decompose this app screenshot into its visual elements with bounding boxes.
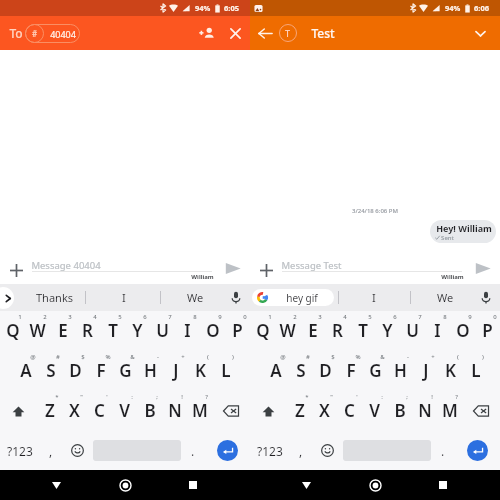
button[interactable]: 2 (25, 311, 50, 351)
button[interactable]: + (163, 351, 188, 391)
button[interactable]: . (431, 431, 455, 470)
button[interactable]: , (290, 431, 312, 470)
button[interactable]: Shift (0, 391, 37, 431)
button[interactable]: Recents (429, 471, 457, 499)
button[interactable]: Backspace (462, 391, 500, 431)
staticText: H (394, 359, 407, 382)
button[interactable]: ) (463, 351, 488, 391)
button[interactable]: Send (222, 257, 244, 279)
button[interactable]: Close (221, 19, 249, 47)
button[interactable]: Back (251, 19, 279, 47)
button[interactable]: : (112, 391, 137, 431)
button[interactable]: ?123 (0, 431, 40, 470)
button[interactable]: # (38, 351, 63, 391)
button[interactable]: hey gif (252, 289, 334, 306)
button[interactable]: , (40, 431, 62, 470)
button[interactable]: Enter (217, 440, 238, 461)
button[interactable]: Recents (179, 471, 207, 499)
button[interactable]: ? (187, 391, 212, 431)
button[interactable]: More suggestions (0, 287, 14, 309)
button[interactable]: Voice input (475, 284, 497, 311)
button[interactable]: @ (263, 351, 288, 391)
button[interactable]: Emoji (312, 431, 343, 470)
button[interactable]: . (181, 431, 205, 470)
button[interactable]: # (288, 351, 313, 391)
button[interactable]: ? (437, 391, 462, 431)
button[interactable]: 1 (250, 311, 275, 351)
button[interactable]: 9 (200, 311, 225, 351)
button[interactable]: 7 (150, 311, 175, 351)
button[interactable]: Expand (466, 19, 494, 47)
button[interactable]: 8 (175, 311, 200, 351)
button[interactable]: # (25, 24, 80, 43)
button[interactable]: Home (111, 471, 139, 499)
button[interactable]: - (138, 351, 163, 391)
staticText: M (442, 399, 458, 422)
button[interactable]: 4 (75, 311, 100, 351)
staticText: Message Test (281, 259, 342, 272)
button[interactable]: We (425, 284, 465, 311)
button[interactable]: Hey! William (430, 220, 496, 243)
button[interactable]: & (363, 351, 388, 391)
staticText: F (346, 359, 356, 382)
button[interactable]: % (338, 351, 363, 391)
button[interactable]: Add person (193, 19, 221, 47)
button[interactable]: I (106, 284, 142, 311)
button[interactable]: 4 (325, 311, 350, 351)
button[interactable]: & (113, 351, 138, 391)
button[interactable]: ' (337, 391, 362, 431)
button[interactable]: - (388, 351, 413, 391)
button[interactable]: 8 (425, 311, 450, 351)
button[interactable]: * (287, 391, 312, 431)
button[interactable]: ! (412, 391, 437, 431)
button[interactable]: 3 (300, 311, 325, 351)
button[interactable]: I (356, 284, 392, 311)
button[interactable]: ' (87, 391, 112, 431)
button[interactable]: ( (188, 351, 213, 391)
button[interactable]: 2 (275, 311, 300, 351)
button[interactable]: " (62, 391, 87, 431)
button[interactable]: " (312, 391, 337, 431)
button[interactable]: 0 (475, 311, 500, 351)
button[interactable]: Thanks (30, 284, 80, 311)
button[interactable]: 6 (125, 311, 150, 351)
button[interactable]: ; (137, 391, 162, 431)
button[interactable]: Attach (255, 259, 277, 281)
button[interactable]: Attach (5, 259, 27, 281)
button[interactable]: 7 (400, 311, 425, 351)
button[interactable]: ?123 (250, 431, 290, 470)
button[interactable]: * (37, 391, 62, 431)
staticText: 94% (195, 3, 211, 13)
button[interactable]: @ (13, 351, 38, 391)
staticText: . (191, 443, 195, 459)
button[interactable]: Shift (250, 391, 287, 431)
button[interactable]: ( (438, 351, 463, 391)
button[interactable]: ) (213, 351, 238, 391)
button[interactable]: Enter (467, 440, 488, 461)
button[interactable]: ; (387, 391, 412, 431)
button[interactable]: Home (361, 471, 389, 499)
button[interactable]: 6 (375, 311, 400, 351)
button[interactable]: Send (472, 257, 494, 279)
button[interactable]: 0 (225, 311, 250, 351)
button[interactable]: Voice input (225, 284, 247, 311)
button[interactable]: ! (162, 391, 187, 431)
button[interactable]: We (175, 284, 215, 311)
button[interactable]: 1 (0, 311, 25, 351)
button[interactable]: 9 (450, 311, 475, 351)
button[interactable]: 3 (50, 311, 75, 351)
button[interactable]: : (362, 391, 387, 431)
button[interactable]: Back (292, 471, 320, 499)
button[interactable]: Emoji (62, 431, 93, 470)
button[interactable]: Back (42, 471, 70, 499)
button[interactable]: $ (63, 351, 88, 391)
button[interactable]: $ (313, 351, 338, 391)
button[interactable]: + (413, 351, 438, 391)
button[interactable]: 5 (100, 311, 125, 351)
button[interactable]: % (88, 351, 113, 391)
staticText: & (130, 353, 135, 361)
button[interactable]: Backspace (212, 391, 250, 431)
button[interactable]: 5 (350, 311, 375, 351)
